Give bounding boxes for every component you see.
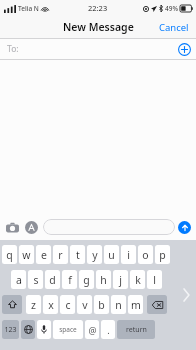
- staticText: p: [159, 248, 166, 262]
- staticText: l: [153, 273, 156, 287]
- button[interactable]: return: [117, 320, 155, 339]
- button[interactable]: u: [104, 245, 119, 264]
- button[interactable]: space: [53, 320, 83, 339]
- staticText: New Message: [63, 20, 134, 34]
- button[interactable]: s: [28, 270, 43, 289]
- staticText: f: [68, 273, 72, 287]
- button[interactable]: [43, 219, 175, 235]
- staticText: s: [33, 273, 39, 287]
- button[interactable]: n: [111, 295, 126, 314]
- button[interactable]: k: [130, 270, 145, 289]
- staticText: w: [22, 248, 31, 262]
- button[interactable]: x: [43, 295, 58, 314]
- staticText: o: [142, 248, 149, 262]
- button[interactable]: 123: [2, 320, 19, 339]
- button[interactable]: Shift: [2, 295, 22, 314]
- staticText: Telia N: [18, 4, 39, 13]
- staticText: h: [100, 273, 107, 287]
- button[interactable]: h: [96, 270, 111, 289]
- button[interactable]: Add contact: [178, 43, 191, 56]
- staticText: q: [6, 248, 13, 262]
- staticText: k: [135, 273, 141, 287]
- staticText: j: [119, 273, 122, 287]
- staticText: 49%: [165, 4, 178, 13]
- staticText: y: [92, 248, 98, 262]
- staticText: return: [126, 325, 147, 335]
- staticText: g: [83, 273, 90, 287]
- button[interactable]: w: [19, 245, 34, 264]
- staticText: v: [82, 298, 88, 312]
- staticText: x: [48, 298, 54, 312]
- button[interactable]: g: [79, 270, 94, 289]
- staticText: e: [41, 248, 47, 262]
- button[interactable]: t: [70, 245, 85, 264]
- button[interactable]: r: [53, 245, 68, 264]
- button[interactable]: q: [2, 245, 17, 264]
- button[interactable]: Dictate: [37, 320, 51, 339]
- staticText: To:: [7, 43, 19, 55]
- button[interactable]: l: [147, 270, 162, 289]
- button[interactable]: y: [87, 245, 102, 264]
- button[interactable]: j: [113, 270, 128, 289]
- button[interactable]: d: [45, 270, 60, 289]
- staticText: Cancel: [159, 21, 189, 34]
- staticText: r: [58, 248, 63, 262]
- staticText: space: [59, 325, 77, 334]
- staticText: b: [98, 298, 105, 312]
- button[interactable]: .: [101, 320, 115, 339]
- button[interactable]: o: [138, 245, 153, 264]
- button[interactable]: Camera: [5, 220, 20, 235]
- staticText: z: [31, 298, 36, 312]
- button[interactable]: z: [26, 295, 41, 314]
- button[interactable]: b: [94, 295, 109, 314]
- staticText: 123: [4, 325, 17, 335]
- button[interactable]: Delete: [147, 295, 167, 314]
- button[interactable]: Cancel: [152, 18, 196, 37]
- button[interactable]: @: [85, 320, 99, 339]
- button[interactable]: To:: [0, 39, 196, 59]
- button[interactable]: c: [60, 295, 75, 314]
- staticText: .: [107, 324, 110, 336]
- staticText: 22:23: [88, 3, 108, 13]
- staticText: d: [49, 273, 56, 287]
- staticText: n: [115, 298, 122, 312]
- button[interactable]: Send: [178, 221, 191, 234]
- staticText: t: [76, 248, 80, 262]
- button[interactable]: i: [121, 245, 136, 264]
- staticText: c: [65, 298, 71, 312]
- button[interactable]: Change keyboard: [21, 320, 35, 339]
- button[interactable]: m: [128, 295, 143, 314]
- button[interactable]: a: [11, 270, 26, 289]
- staticText: @: [88, 324, 97, 336]
- button[interactable]: p: [155, 245, 170, 264]
- staticText: m: [131, 298, 141, 312]
- button[interactable]: Apps: [24, 220, 39, 235]
- button[interactable]: v: [77, 295, 92, 314]
- staticText: a: [16, 273, 22, 287]
- button[interactable]: e: [36, 245, 51, 264]
- staticText: u: [108, 248, 115, 262]
- staticText: i: [127, 248, 130, 262]
- button[interactable]: f: [62, 270, 77, 289]
